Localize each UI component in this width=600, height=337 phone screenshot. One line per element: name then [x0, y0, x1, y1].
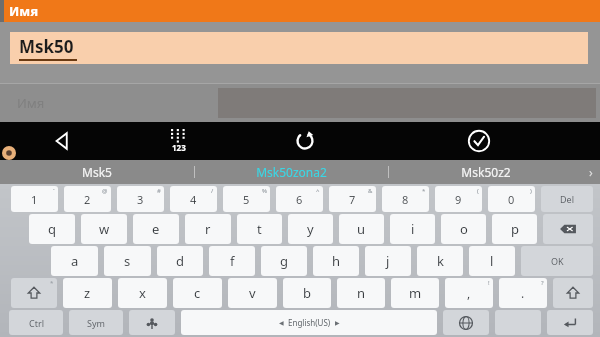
button[interactable]: OK — [521, 246, 593, 276]
button[interactable]: Undo — [288, 124, 322, 158]
button[interactable]: u — [339, 214, 384, 244]
button[interactable]: m — [391, 278, 439, 308]
staticText: Имя — [9, 2, 39, 20]
button[interactable]: x — [118, 278, 167, 308]
button[interactable]: 3 — [117, 186, 164, 212]
button[interactable]: b — [283, 278, 331, 308]
button[interactable]: Msk50zona2 — [195, 160, 388, 184]
button[interactable]: 4 — [170, 186, 217, 212]
button[interactable]: o — [441, 214, 486, 244]
staticText: ◀ — [279, 319, 284, 326]
staticText: ( — [477, 187, 479, 195]
button[interactable]: f — [209, 246, 255, 276]
button[interactable]: a — [51, 246, 98, 276]
staticText: b — [303, 284, 311, 302]
button[interactable]: d — [157, 246, 203, 276]
button[interactable]: y — [288, 214, 333, 244]
staticText: @ — [102, 187, 108, 195]
button[interactable]: Numbers — [160, 123, 196, 159]
button[interactable]: Sym — [69, 310, 123, 335]
button[interactable]: e — [133, 214, 179, 244]
staticText: / — [211, 187, 214, 195]
staticText: f — [230, 252, 235, 270]
staticText: OK — [551, 255, 564, 267]
staticText: l — [490, 252, 494, 270]
staticText: Имя — [17, 94, 45, 112]
staticText: % — [262, 187, 267, 195]
staticText: 5 — [243, 192, 250, 207]
button[interactable]: Enter — [547, 310, 593, 335]
button[interactable]: q — [29, 214, 75, 244]
button[interactable]: ◀ — [181, 310, 437, 335]
button[interactable]: Msk50z2 — [389, 160, 582, 184]
button[interactable]: Msk50 — [10, 32, 588, 64]
staticText: 9 — [455, 192, 462, 207]
button[interactable]: , — [445, 278, 493, 308]
staticText: v — [249, 284, 256, 302]
staticText: 0 — [508, 192, 515, 207]
staticText: ! — [488, 279, 490, 287]
button[interactable]: r — [185, 214, 231, 244]
staticText: & — [368, 187, 373, 195]
button[interactable]: Shift — [553, 278, 593, 308]
staticText: 4 — [190, 192, 197, 207]
staticText: English(US) — [288, 317, 331, 328]
button[interactable]: 7 — [329, 186, 376, 212]
staticText: u — [357, 220, 366, 238]
staticText: t — [257, 220, 262, 238]
button[interactable]: n — [337, 278, 385, 308]
button[interactable]: . — [499, 278, 547, 308]
button[interactable]: 8 — [382, 186, 429, 212]
staticText: z — [84, 284, 91, 302]
button[interactable]: Ctrl — [9, 310, 63, 335]
button[interactable]: Emoji — [129, 310, 175, 335]
button[interactable]: s — [104, 246, 151, 276]
staticText: ^ — [316, 187, 320, 195]
staticText: Sym — [87, 317, 105, 329]
staticText: ▶ — [335, 319, 340, 326]
button[interactable]: c — [173, 278, 222, 308]
button[interactable]: 2 — [64, 186, 111, 212]
staticText: . — [521, 285, 525, 301]
staticText: # — [157, 187, 161, 195]
staticText: i — [411, 220, 415, 238]
button[interactable]: Msk5 — [0, 160, 194, 184]
button[interactable]: 9 — [435, 186, 482, 212]
staticText: Ctrl — [29, 317, 44, 329]
button[interactable]: Backspace — [543, 214, 593, 244]
staticText: y — [307, 220, 314, 238]
button[interactable]: j — [365, 246, 411, 276]
button[interactable]: 6 — [276, 186, 323, 212]
staticText: 3 — [137, 192, 144, 207]
staticText: j — [386, 252, 390, 270]
button[interactable]: Shift — [11, 278, 57, 308]
button[interactable]: Del — [541, 186, 593, 212]
button[interactable]: 0 — [488, 186, 535, 212]
button[interactable]: g — [261, 246, 307, 276]
staticText: e — [152, 220, 160, 238]
button[interactable]: i — [390, 214, 435, 244]
button[interactable]: v — [228, 278, 277, 308]
staticText: k — [437, 252, 444, 270]
button[interactable]: Done — [462, 124, 496, 158]
staticText: ` — [53, 187, 55, 195]
button[interactable]: t — [237, 214, 282, 244]
staticText: a — [71, 252, 79, 270]
staticText: 123 — [172, 142, 186, 153]
button[interactable]: More suggestions — [582, 160, 600, 184]
button[interactable]: Back — [45, 124, 79, 158]
button[interactable]: Language — [443, 310, 489, 335]
staticText: w — [99, 220, 110, 238]
button[interactable]: k — [417, 246, 463, 276]
staticText: q — [48, 220, 56, 238]
button[interactable]: z — [63, 278, 112, 308]
button[interactable]: w — [81, 214, 127, 244]
staticText: o — [460, 220, 468, 238]
button[interactable]: 1 — [11, 186, 58, 212]
button[interactable]: 5 — [223, 186, 270, 212]
button[interactable]: p — [492, 214, 537, 244]
button[interactable]: h — [313, 246, 359, 276]
staticText: * — [50, 279, 54, 287]
button[interactable]: l — [469, 246, 515, 276]
